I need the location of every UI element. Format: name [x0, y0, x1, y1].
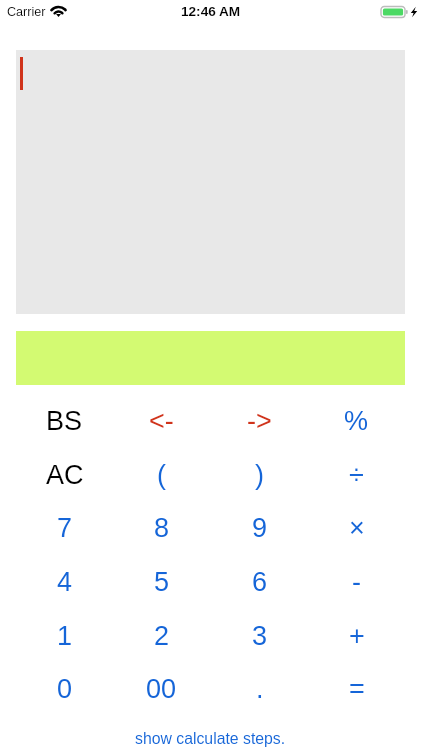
- button[interactable]: Move cursor left: [113, 394, 210, 448]
- staticText: <-: [149, 406, 174, 436]
- button[interactable]: Expression input field: [16, 50, 405, 314]
- staticText: show calculate steps.: [135, 730, 286, 748]
- staticText: 5: [154, 567, 170, 597]
- button[interactable]: Six: [211, 555, 308, 609]
- button[interactable]: Two: [113, 609, 210, 663]
- button[interactable]: Equals: [308, 662, 405, 716]
- staticText: 7: [57, 513, 73, 543]
- button[interactable]: Open bracket: [113, 448, 210, 502]
- button[interactable]: All clear: [16, 448, 113, 502]
- staticText: AC: [46, 460, 84, 490]
- staticText: .: [256, 674, 264, 704]
- button[interactable]: Move cursor right: [211, 394, 308, 448]
- button[interactable]: Plus: [308, 609, 405, 663]
- button[interactable]: Percent: [308, 394, 405, 448]
- other: Battery full, charging: [381, 6, 417, 18]
- staticText: ->: [247, 406, 272, 436]
- staticText: ÷: [349, 460, 364, 490]
- button[interactable]: show calculate steps.: [16, 722, 405, 750]
- staticText: -: [352, 567, 361, 597]
- button[interactable]: Divide: [308, 448, 405, 502]
- staticText: +: [349, 621, 365, 651]
- staticText: 6: [252, 567, 268, 597]
- button[interactable]: Multiply: [308, 501, 405, 555]
- staticText: 4: [57, 567, 73, 597]
- button[interactable]: Zero: [16, 662, 113, 716]
- staticText: 0: [57, 674, 73, 704]
- staticText: Carrier: [7, 5, 46, 19]
- staticText: 9: [252, 513, 268, 543]
- staticText: 3: [252, 621, 268, 651]
- button[interactable]: Nine: [211, 501, 308, 555]
- staticText: ): [255, 460, 264, 490]
- button[interactable]: Decimal point: [211, 662, 308, 716]
- button[interactable]: Seven: [16, 501, 113, 555]
- button[interactable]: Five: [113, 555, 210, 609]
- button[interactable]: Eight: [113, 501, 210, 555]
- button[interactable]: Four: [16, 555, 113, 609]
- button[interactable]: Close bracket: [211, 448, 308, 502]
- staticText: 12:46 AM: [181, 4, 241, 19]
- staticText: BS: [46, 406, 83, 436]
- staticText: 8: [154, 513, 170, 543]
- staticText: ×: [349, 513, 365, 543]
- button[interactable]: Three: [211, 609, 308, 663]
- staticText: %: [344, 406, 369, 436]
- button[interactable]: Minus: [308, 555, 405, 609]
- other: Wi-Fi connected: [51, 5, 66, 18]
- button[interactable]: Backspace: [16, 394, 113, 448]
- staticText: 2: [154, 621, 170, 651]
- staticText: 1: [57, 621, 73, 651]
- staticText: =: [349, 674, 365, 704]
- button[interactable]: Double zero: [113, 662, 210, 716]
- staticText: (: [157, 460, 166, 490]
- staticText: 00: [146, 674, 177, 704]
- button[interactable]: One: [16, 609, 113, 663]
